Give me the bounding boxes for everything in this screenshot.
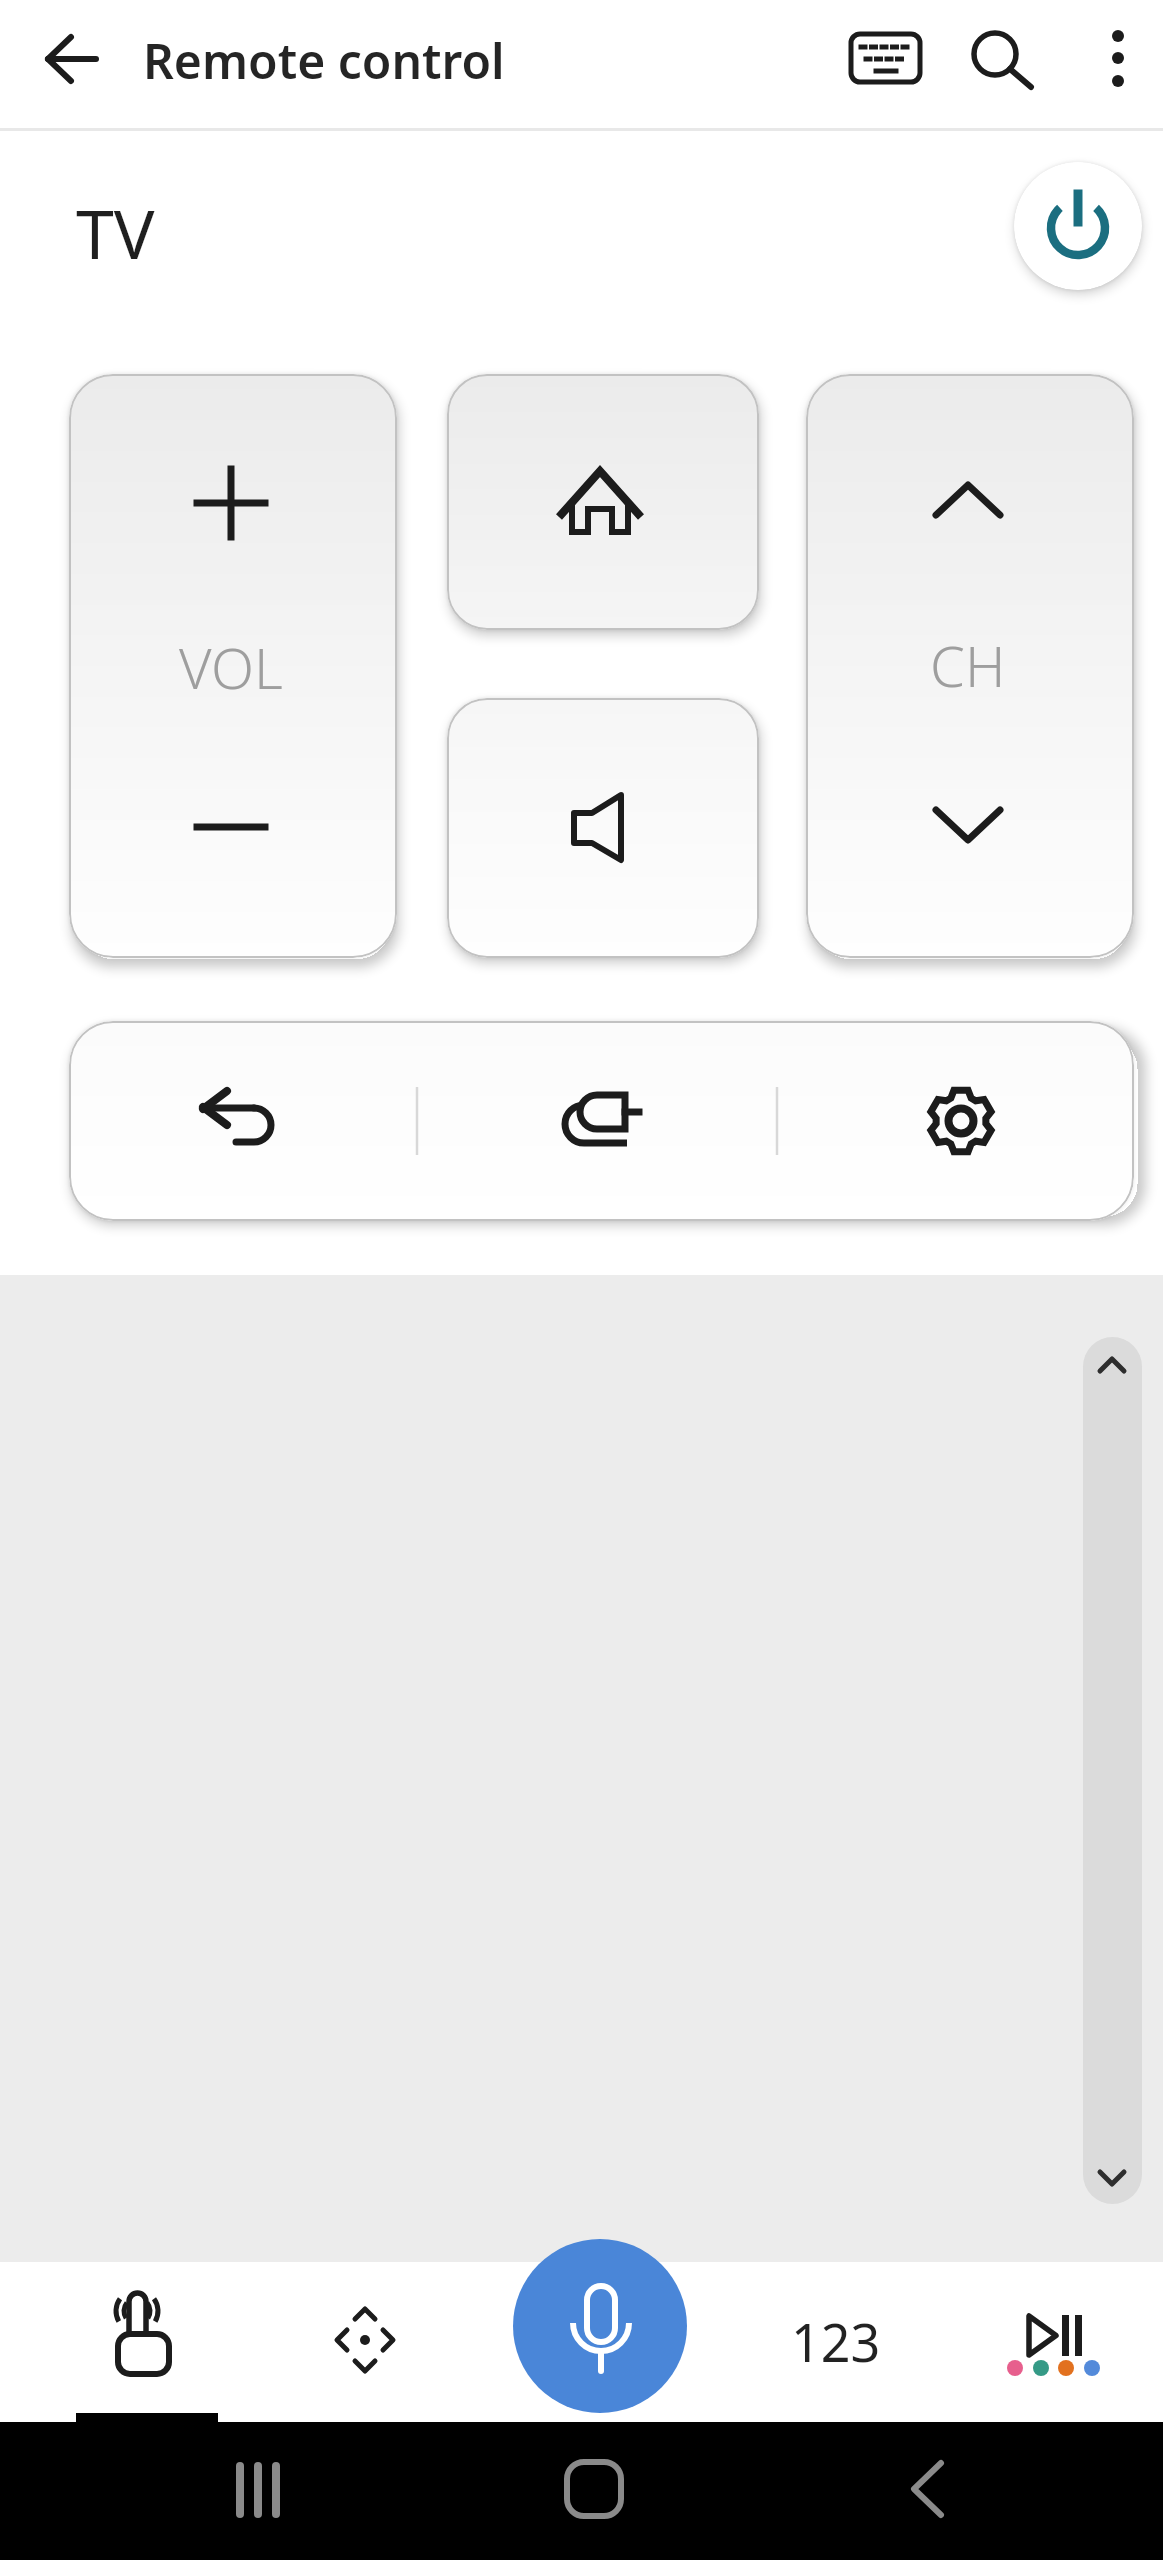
staticText: VOL [179,629,283,705]
button[interactable] [513,2239,687,2413]
button[interactable] [447,374,759,630]
button[interactable] [1000,2290,1110,2390]
button[interactable] [780,2290,892,2390]
button[interactable] [806,374,1134,958]
button[interactable] [313,2288,418,2393]
button[interactable] [1014,162,1142,290]
button[interactable] [90,2285,195,2390]
button[interactable] [1083,1337,1142,2204]
button[interactable] [69,374,397,958]
staticText: CH [930,627,1006,703]
button[interactable] [1073,13,1163,105]
staticText: 123 [791,2306,881,2377]
button[interactable] [870,2440,990,2550]
button[interactable] [447,698,759,958]
button[interactable] [840,13,932,105]
staticText: Remote control [143,28,505,93]
button[interactable] [24,20,114,100]
button[interactable] [69,1021,1134,1221]
button[interactable] [0,1275,1163,2262]
button[interactable] [534,2440,654,2550]
button[interactable] [950,13,1042,105]
button[interactable] [200,2440,320,2550]
staticText: TV [76,186,155,278]
